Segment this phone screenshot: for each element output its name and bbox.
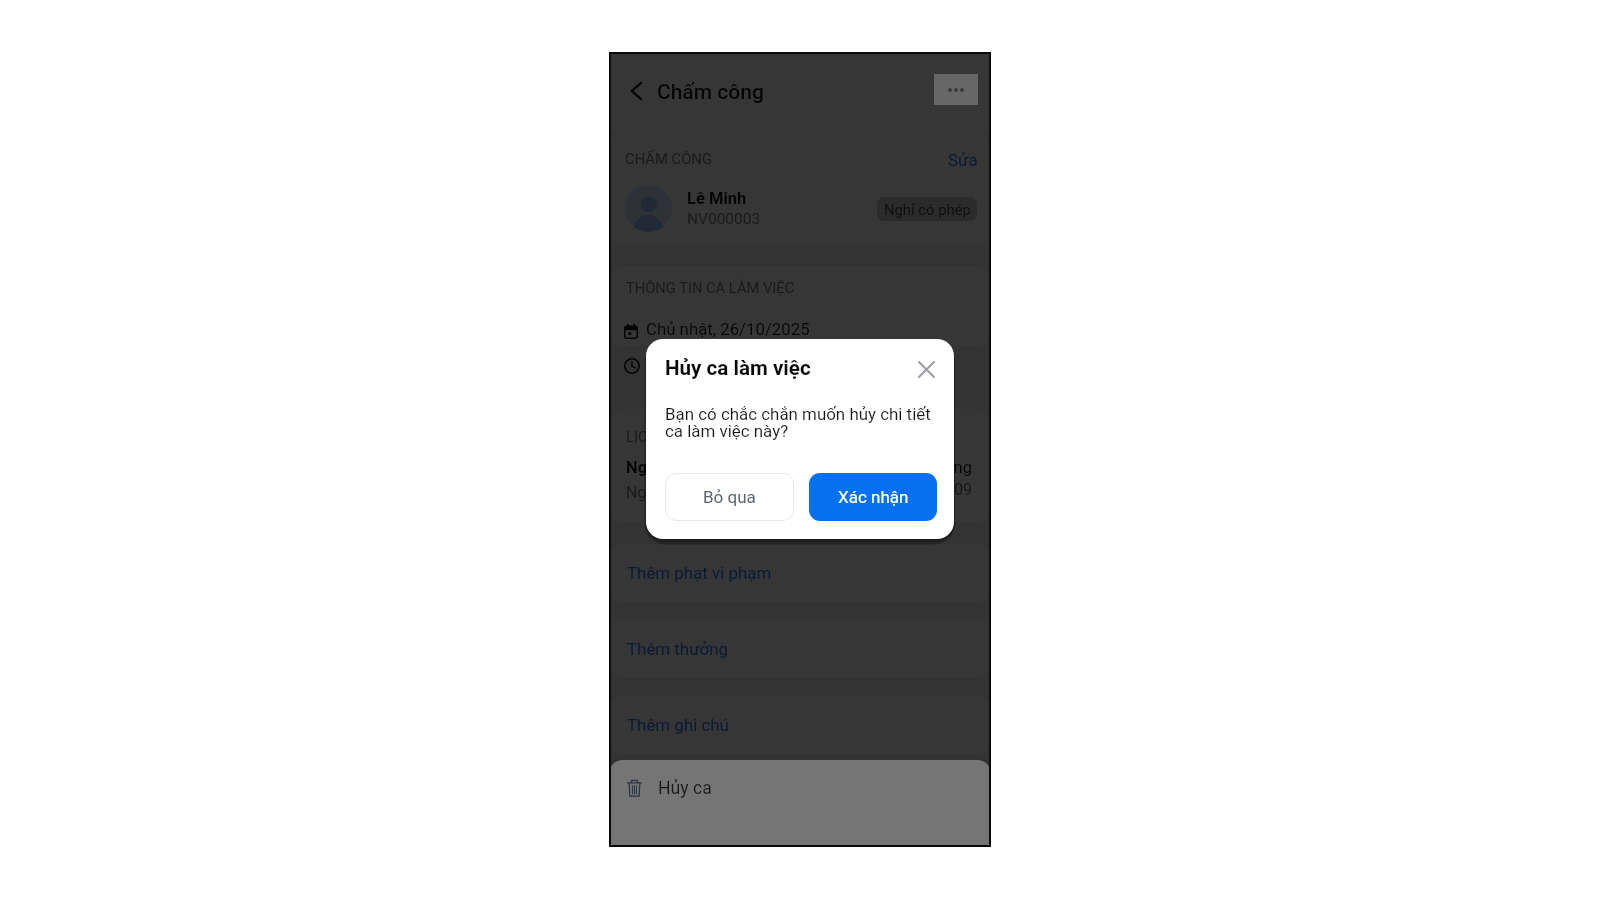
staticText: Thêm thưởng <box>627 639 729 659</box>
staticText: NV000003 <box>687 210 761 228</box>
button[interactable]: More options <box>934 74 978 105</box>
button[interactable]: Back <box>622 76 651 105</box>
button[interactable]: Hủy ca <box>609 763 991 815</box>
staticText: Chủ nhật, 26/10/2025 <box>646 319 810 339</box>
staticText: CHẤM CÔNG <box>625 150 713 167</box>
button[interactable]: Thêm phạt vi phạm <box>611 544 989 602</box>
staticText: Bạn có chắc chắn muốn hủy chi tiết ca là… <box>665 404 931 441</box>
button[interactable]: Sửa <box>931 150 977 178</box>
staticText: THÔNG TIN CA LÀM VIỆC <box>626 279 795 296</box>
staticText: Bỏ qua <box>703 487 756 507</box>
staticText: Lê Minh <box>687 189 747 208</box>
staticText: Thêm phạt vi phạm <box>627 563 772 583</box>
staticText: 08:00 - 17:00 <box>646 354 743 374</box>
button[interactable]: Bỏ qua <box>665 473 794 521</box>
button[interactable]: Thêm thưởng <box>611 620 989 678</box>
button[interactable]: Thêm ghi chú <box>611 696 989 754</box>
staticText: Hủy ca <box>658 778 712 799</box>
staticText: Sửa <box>948 150 978 170</box>
button[interactable]: Close <box>914 357 938 381</box>
staticText: Nghỉ có phép <box>884 201 971 218</box>
staticText: Ngày 26/10/2025 <box>626 458 757 477</box>
staticText: Hủy ca làm việc <box>665 356 811 380</box>
staticText: Chấm công <box>809 458 972 477</box>
staticText: 08:09 <box>809 480 972 499</box>
button[interactable]: Xác nhận <box>809 473 937 521</box>
staticText: Xác nhận <box>838 487 909 507</box>
staticText: Thêm ghi chú <box>627 715 729 735</box>
staticText: LỊCH SỬ <box>626 428 681 445</box>
staticText: Chấm công <box>657 80 764 105</box>
staticText: Ngày công: 1 <box>626 483 719 502</box>
